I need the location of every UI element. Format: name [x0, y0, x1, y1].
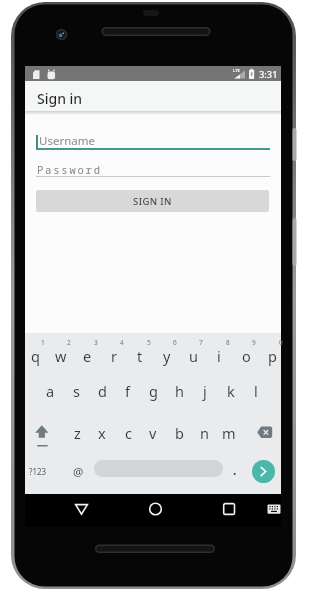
button[interactable]: [69, 497, 94, 524]
button[interactable]: p: [259, 343, 285, 369]
staticText: c: [125, 423, 132, 443]
staticText: o: [242, 346, 251, 366]
button[interactable]: a: [37, 378, 63, 404]
staticText: f: [125, 381, 130, 401]
button[interactable]: j: [192, 378, 218, 404]
staticText: s: [73, 381, 80, 401]
staticText: 1: [41, 338, 45, 347]
button[interactable]: SIGN IN: [36, 190, 269, 212]
staticText: r: [111, 346, 117, 366]
staticText: h: [175, 381, 184, 401]
button[interactable]: [29, 421, 55, 447]
button[interactable]: [252, 421, 278, 447]
button[interactable]: q: [22, 343, 48, 369]
staticText: a: [46, 381, 55, 401]
staticText: d: [98, 381, 107, 401]
button[interactable]: .: [228, 460, 242, 480]
staticText: 8: [226, 338, 230, 347]
staticText: 2: [67, 338, 71, 347]
button[interactable]: y: [154, 343, 180, 369]
staticText: 3:31: [259, 68, 278, 81]
staticText: 9: [252, 338, 256, 347]
staticText: z: [74, 423, 81, 443]
staticText: 3: [94, 338, 98, 347]
staticText: k: [227, 381, 235, 401]
staticText: y: [163, 346, 171, 366]
staticText: Sign in: [37, 89, 83, 108]
button[interactable]: r: [101, 343, 127, 369]
button[interactable]: [36, 128, 270, 150]
staticText: t: [137, 346, 143, 366]
staticText: 7: [199, 338, 203, 347]
staticText: 6: [173, 338, 177, 347]
staticText: v: [149, 423, 157, 443]
staticText: ?123: [29, 466, 47, 477]
button[interactable]: o: [233, 343, 259, 369]
button[interactable]: [36, 157, 270, 177]
button[interactable]: w: [48, 343, 74, 369]
staticText: w: [55, 346, 67, 366]
staticText: .: [233, 462, 237, 478]
staticText: 4: [120, 338, 124, 347]
staticText: @: [73, 464, 84, 480]
button[interactable]: h: [166, 378, 192, 404]
staticText: x: [98, 423, 106, 443]
button[interactable]: k: [218, 378, 244, 404]
button[interactable]: d: [89, 378, 115, 404]
button[interactable]: m: [216, 420, 242, 446]
staticText: g: [149, 381, 158, 401]
staticText: p: [268, 346, 277, 366]
staticText: n: [200, 423, 209, 443]
staticText: Username: [39, 133, 95, 148]
button[interactable]: u: [180, 343, 206, 369]
staticText: q: [31, 346, 40, 366]
button[interactable]: [143, 497, 168, 524]
button[interactable]: e: [74, 343, 100, 369]
staticText: SIGN IN: [133, 195, 172, 208]
button[interactable]: v: [140, 420, 166, 446]
button[interactable]: [94, 460, 223, 477]
button[interactable]: l: [243, 378, 269, 404]
staticText: b: [175, 423, 184, 443]
button[interactable]: [261, 497, 286, 524]
button[interactable]: z: [64, 420, 90, 446]
button[interactable]: [252, 460, 275, 483]
button[interactable]: [216, 497, 241, 524]
staticText: Password: [37, 163, 102, 177]
staticText: u: [189, 346, 198, 366]
button[interactable]: t: [127, 343, 153, 369]
button[interactable]: n: [191, 420, 217, 446]
staticText: 0: [279, 338, 283, 347]
staticText: l: [254, 381, 258, 401]
button[interactable]: f: [114, 378, 140, 404]
button[interactable]: c: [115, 420, 141, 446]
button[interactable]: s: [63, 378, 89, 404]
button[interactable]: x: [89, 420, 115, 446]
button[interactable]: @: [66, 462, 90, 482]
staticText: i: [217, 346, 221, 366]
button[interactable]: i: [206, 343, 232, 369]
button[interactable]: b: [166, 420, 192, 446]
staticText: j: [203, 381, 207, 401]
button[interactable]: g: [140, 378, 166, 404]
staticText: m: [222, 423, 236, 443]
staticText: 5: [147, 338, 151, 347]
button[interactable]: ?123: [26, 462, 50, 480]
staticText: e: [83, 346, 92, 366]
staticText: LTE: [233, 68, 240, 73]
